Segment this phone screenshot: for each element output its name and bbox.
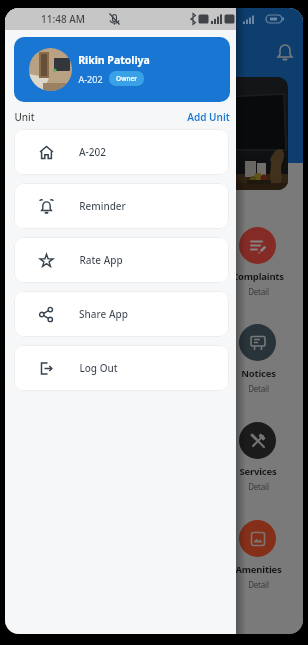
staticText: Notices	[241, 367, 276, 380]
button[interactable]: Share App	[14, 291, 229, 337]
staticText: Detail	[248, 579, 269, 590]
staticText: Owner	[116, 74, 137, 83]
staticText: A-202	[78, 73, 103, 85]
button[interactable]: Rate App	[14, 237, 229, 283]
button[interactable]	[239, 520, 276, 557]
staticText: Complaints	[232, 270, 284, 283]
staticText: Share App	[79, 307, 128, 321]
staticText: Rate App	[79, 253, 123, 267]
staticText: Add Unit	[187, 110, 230, 124]
staticText: Unit	[14, 110, 35, 124]
button[interactable]: A-202	[14, 129, 229, 175]
button[interactable]	[239, 324, 276, 361]
staticText: A-202	[79, 145, 106, 159]
staticText: 11:48 AM	[41, 12, 85, 26]
staticText: Detail	[248, 383, 269, 394]
button[interactable]: Log Out	[14, 345, 229, 391]
button[interactable]	[239, 227, 276, 264]
button[interactable]: Add Unit	[187, 110, 230, 124]
button[interactable]: Rikin Patoliya	[14, 37, 230, 102]
button[interactable]	[239, 422, 276, 459]
staticText: Amenities	[235, 563, 282, 576]
button[interactable]: Owner	[116, 74, 137, 83]
staticText: Services	[239, 465, 277, 478]
button[interactable]	[273, 41, 297, 65]
staticText: Detail	[248, 286, 269, 297]
staticText: Reminder	[79, 199, 126, 213]
staticText: Detail	[248, 481, 269, 492]
staticText: Log Out	[79, 361, 118, 375]
button[interactable]: Reminder	[14, 183, 229, 229]
staticText: Rikin Patoliya	[78, 53, 150, 67]
